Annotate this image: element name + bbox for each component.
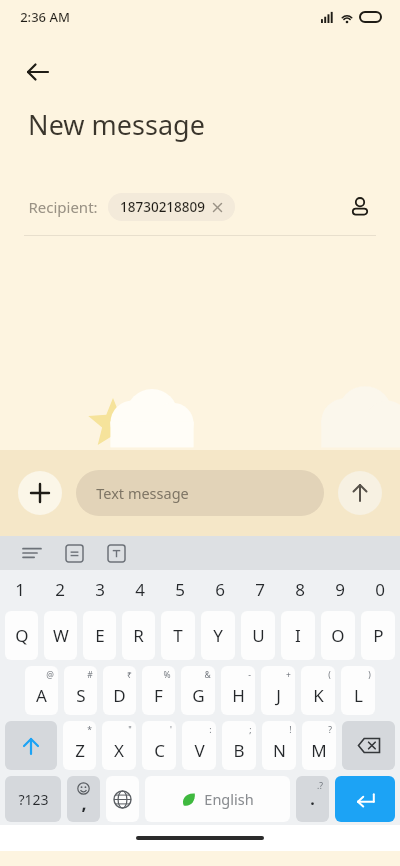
button[interactable]: Menu — [18, 539, 46, 567]
button[interactable]: ; — [222, 721, 256, 770]
staticText: .? — [317, 780, 323, 792]
staticText: P — [373, 624, 384, 647]
staticText: & — [204, 669, 211, 681]
button[interactable]: Text message — [76, 470, 324, 516]
staticText: * — [87, 724, 92, 736]
button[interactable]: 0 — [360, 570, 400, 608]
button[interactable]: 18730218809 — [108, 193, 235, 221]
staticText: 8 — [295, 578, 305, 601]
button[interactable]: 9 — [320, 570, 360, 608]
staticText: S — [76, 684, 86, 707]
staticText: I — [295, 624, 301, 647]
button[interactable]: I — [281, 611, 315, 660]
button[interactable]: ? — [302, 721, 336, 770]
staticText: 0 — [375, 578, 385, 601]
button[interactable]: 8 — [280, 570, 320, 608]
staticText: 2:36 AM — [20, 8, 70, 26]
staticText: E — [95, 624, 105, 647]
staticText: New message — [28, 106, 205, 143]
button[interactable]: ! — [262, 721, 296, 770]
staticText: ?123 — [18, 790, 49, 809]
button[interactable]: 5 — [160, 570, 200, 608]
staticText: ' — [170, 724, 172, 736]
button[interactable]: Enter — [335, 776, 395, 822]
button[interactable]: Clipboard — [60, 539, 88, 567]
staticText: W — [53, 624, 69, 647]
staticText: ₹ — [127, 669, 132, 681]
staticText: English — [204, 789, 254, 809]
button[interactable]: Text settings — [102, 539, 130, 567]
staticText: 7 — [255, 578, 265, 601]
button[interactable]: 7 — [240, 570, 280, 608]
staticText: L — [354, 684, 363, 707]
button[interactable]: ( — [301, 666, 335, 715]
button[interactable]: - — [221, 666, 255, 715]
staticText: % — [163, 669, 171, 681]
button[interactable]: : — [182, 721, 216, 770]
button[interactable]: Period — [296, 776, 329, 822]
button[interactable]: E — [83, 611, 116, 660]
staticText: K — [313, 684, 324, 707]
button[interactable]: @ — [25, 666, 58, 715]
staticText: 2 — [55, 578, 65, 601]
button[interactable]: P — [361, 611, 395, 660]
staticText: 6 — [215, 578, 225, 601]
button[interactable]: 4 — [120, 570, 160, 608]
button[interactable]: English — [145, 776, 290, 822]
button[interactable]: Backspace — [342, 721, 395, 770]
staticText: B — [233, 739, 245, 762]
button[interactable]: 2 — [40, 570, 80, 608]
staticText: U — [252, 624, 265, 647]
button[interactable]: O — [321, 611, 355, 660]
button[interactable]: Q — [5, 611, 38, 660]
button[interactable]: Send — [338, 471, 382, 515]
button[interactable]: + — [261, 666, 295, 715]
button[interactable]: Y — [201, 611, 235, 660]
button[interactable]: * — [63, 721, 96, 770]
staticText: M — [311, 739, 327, 762]
staticText: D — [113, 684, 126, 707]
button[interactable]: 3 — [80, 570, 120, 608]
staticText: , — [81, 791, 87, 816]
button[interactable]: Contacts — [340, 187, 380, 227]
staticText: # — [87, 669, 93, 681]
staticText: F — [154, 684, 163, 707]
button[interactable]: ?123 — [5, 776, 61, 822]
staticText: Recipient: — [28, 197, 98, 217]
staticText: - — [248, 669, 251, 681]
staticText: @ — [46, 669, 54, 681]
staticText: ; — [249, 724, 252, 736]
staticText: X — [114, 739, 124, 762]
staticText: T — [173, 624, 183, 647]
staticText: ! — [289, 724, 292, 736]
button[interactable]: R — [122, 611, 155, 660]
staticText: H — [232, 684, 245, 707]
button[interactable]: ) — [341, 666, 375, 715]
button[interactable]: Emoji and comma — [67, 776, 100, 822]
button[interactable]: Back — [14, 48, 62, 96]
button[interactable]: ' — [142, 721, 176, 770]
staticText: ) — [368, 669, 371, 681]
staticText: G — [192, 684, 205, 707]
button[interactable]: & — [181, 666, 215, 715]
button[interactable]: Change language — [106, 776, 139, 822]
button[interactable]: " — [102, 721, 136, 770]
staticText: + — [286, 669, 291, 681]
staticText: O — [331, 624, 345, 647]
staticText: Z — [75, 739, 85, 762]
button[interactable]: T — [161, 611, 195, 660]
button[interactable]: Add attachment — [18, 471, 62, 515]
button[interactable]: % — [142, 666, 175, 715]
staticText: ( — [328, 669, 331, 681]
staticText: 18730218809 — [120, 198, 205, 216]
button[interactable]: # — [64, 666, 97, 715]
staticText: " — [128, 724, 132, 736]
button[interactable]: ₹ — [103, 666, 136, 715]
staticText: A — [36, 684, 47, 707]
button[interactable]: Shift — [5, 721, 57, 770]
button[interactable]: 1 — [0, 570, 40, 608]
button[interactable]: W — [44, 611, 77, 660]
button[interactable]: U — [241, 611, 275, 660]
staticText: 4 — [135, 578, 145, 601]
button[interactable]: 6 — [200, 570, 240, 608]
